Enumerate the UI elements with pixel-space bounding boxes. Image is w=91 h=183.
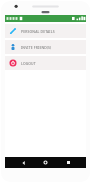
staticText: PERSONAL DETAILS xyxy=(21,29,55,34)
other: Personal details xyxy=(9,27,17,35)
button[interactable]: Recents xyxy=(64,158,73,167)
staticText: INVITE FRIEND(S) xyxy=(21,45,52,50)
other: Invite friends xyxy=(9,43,17,51)
button[interactable]: Back xyxy=(19,158,28,167)
other: Logout xyxy=(9,59,17,67)
button[interactable]: Home xyxy=(41,158,50,167)
staticText: LOGOUT xyxy=(21,61,36,66)
button[interactable]: Personal details xyxy=(5,24,86,38)
button[interactable]: Invite friends xyxy=(5,40,86,54)
button[interactable]: Logout xyxy=(5,56,86,70)
